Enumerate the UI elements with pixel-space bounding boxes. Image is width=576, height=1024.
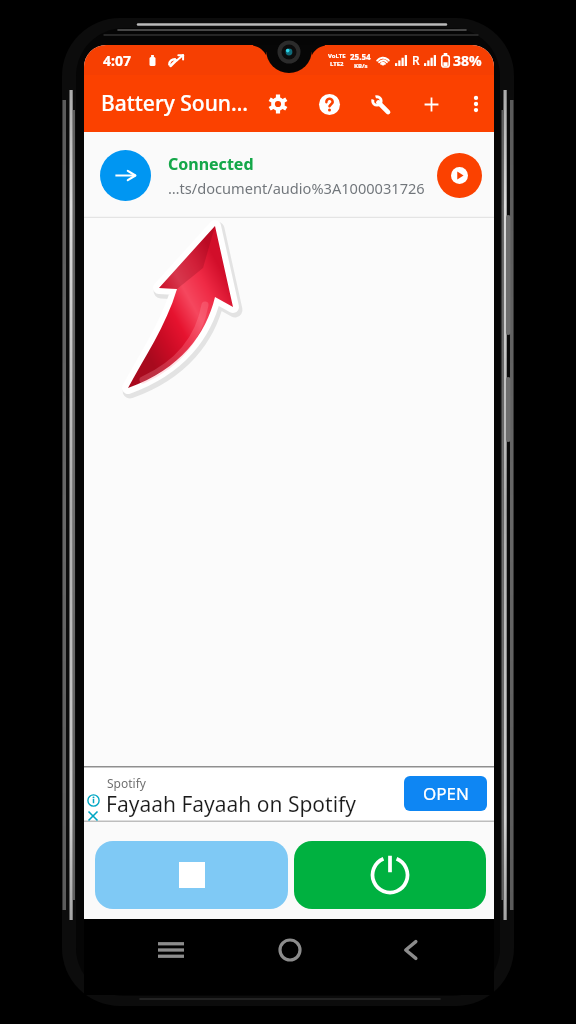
button[interactable]: Connect [100, 150, 151, 201]
staticText: 4:07 [103, 51, 131, 70]
staticText: Battery Soun… [101, 89, 249, 118]
staticText: LTE2 [330, 60, 344, 68]
button[interactable]: Add [411, 84, 451, 124]
button[interactable]: Back [386, 919, 436, 995]
button[interactable]: Stop [95, 841, 288, 909]
staticText: Spotify [107, 775, 146, 791]
staticText: VoLTE [328, 52, 346, 60]
staticText: Connected [168, 153, 254, 175]
staticText: 25.54 [350, 51, 371, 62]
staticText: KB/s [354, 62, 368, 70]
button[interactable]: Home [265, 919, 315, 995]
button[interactable]: Recent apps [146, 919, 196, 995]
button[interactable]: Power [294, 841, 486, 909]
button[interactable]: Play [437, 153, 482, 198]
button[interactable]: OPEN [404, 776, 487, 811]
button[interactable]: Help [309, 84, 349, 124]
button[interactable]: Settings [258, 84, 298, 124]
staticText: 38% [453, 51, 482, 70]
staticText: OPEN [423, 782, 469, 805]
button[interactable]: Tools [360, 84, 400, 124]
staticText: Fayaah Fayaah on Spotify [106, 790, 357, 819]
button[interactable]: More options [456, 84, 494, 124]
staticText: …ts/document/audio%3A1000031726 [168, 178, 425, 198]
staticText: R [412, 52, 420, 68]
